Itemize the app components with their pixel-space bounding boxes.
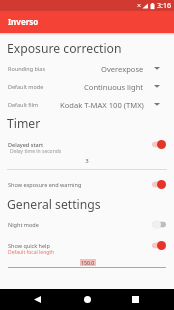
- button[interactable]: Recents: [122, 289, 148, 310]
- staticText: Default focal length: [8, 249, 55, 256]
- button[interactable]: Delay time in seconds: [0, 148, 174, 155]
- button[interactable]: Show quick help: [0, 237, 174, 253]
- staticText: Night mode: [8, 221, 39, 228]
- button[interactable]: Home: [74, 289, 100, 310]
- staticText: Show quick help: [8, 242, 50, 249]
- staticText: Timer: [7, 115, 41, 132]
- staticText: Kodak T-MAX 100 (TMX): [60, 100, 144, 110]
- staticText: Delay time in seconds: [10, 148, 62, 155]
- button[interactable]: Show exposure end warning: [0, 176, 174, 192]
- staticText: Delayed start: [8, 141, 44, 148]
- staticText: Show exposure end warning: [8, 181, 82, 188]
- staticText: 150.0: [81, 259, 95, 266]
- button[interactable]: Delayed start: [0, 136, 174, 152]
- staticText: General settings: [7, 196, 101, 213]
- staticText: Exposure correction: [7, 40, 122, 57]
- staticText: Inverso: [8, 16, 39, 27]
- staticText: Overexpose: [101, 64, 144, 74]
- button[interactable]: Default film: [0, 95, 174, 113]
- button[interactable]: Default mode: [0, 77, 174, 95]
- button[interactable]: Back: [24, 289, 50, 310]
- button[interactable]: Rounding bias: [0, 59, 174, 77]
- button[interactable]: Night mode: [0, 216, 174, 232]
- staticText: Default mode: [8, 83, 44, 90]
- button[interactable]: Default focal length: [0, 249, 174, 256]
- staticText: Rounding bias: [8, 65, 46, 72]
- staticText: 3:16: [157, 1, 171, 11]
- staticText: Continuous light: [84, 82, 144, 92]
- staticText: 3: [8, 157, 166, 165]
- staticText: Default film: [8, 101, 39, 108]
